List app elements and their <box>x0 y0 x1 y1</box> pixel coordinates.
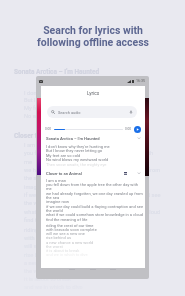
other: Expand <box>137 136 141 140</box>
staticText: the world <box>24 200 48 207</box>
staticText: you fell down from the apple tree the ot… <box>24 150 154 157</box>
button[interactable]: Play <box>134 126 141 133</box>
staticText: we had already forgotten, we one day cra… <box>24 167 161 174</box>
staticText: the sea <box>46 195 60 200</box>
staticText: find the meaning of life <box>46 217 88 222</box>
staticText: Lyrics <box>87 91 100 97</box>
staticText: Sonata Arctica – I'm Haunted <box>14 68 100 76</box>
staticText: a new chance a new world <box>24 260 91 267</box>
staticText: the world <box>46 208 63 213</box>
staticText: Closer to an Animal <box>46 171 82 176</box>
staticText: if we one day could build a flaying cont… <box>24 192 161 199</box>
staticText: the sea <box>24 175 43 182</box>
button[interactable]: Closer to an Animal <box>46 170 141 176</box>
staticText: will we see a new one <box>46 231 85 236</box>
staticText: Closer to an Animal <box>14 132 72 140</box>
staticText: if we one day could build a flaying cont… <box>46 204 144 209</box>
other: Voice search <box>129 110 133 114</box>
staticText: we had already forgotten, we one day cra… <box>46 191 143 196</box>
staticText: No wind blows my westward world <box>46 157 109 162</box>
staticText: I am a man <box>24 142 53 149</box>
staticText: me <box>46 186 52 191</box>
staticText: the worst <box>46 244 63 249</box>
staticText: and we in which to dive <box>46 252 88 257</box>
staticText: Then snow awaits, the mighty eye <box>46 162 107 167</box>
staticText: rise behind us <box>24 252 60 259</box>
staticText: My feet are so cold <box>24 105 73 112</box>
staticText: My feet are so cold <box>46 153 81 158</box>
staticText: But I know they never letting go <box>46 148 103 153</box>
staticText: the worst <box>24 268 48 275</box>
other: Expand <box>137 171 141 175</box>
staticText: 16:35 <box>136 79 145 83</box>
staticText: 0:00 <box>45 127 52 131</box>
staticText: will we see a new one <box>24 243 79 250</box>
staticText: rise behind us <box>46 235 72 240</box>
staticText: But I know they never letting go <box>24 97 103 104</box>
staticText: Search audio <box>58 110 81 115</box>
button[interactable]: Sonata Arctica – I'm Haunted <box>46 135 141 141</box>
staticText: I don't know why they're hunting me <box>24 90 114 97</box>
staticText: riding the crest of our time <box>24 227 91 234</box>
staticText: No wind blows my westward world <box>24 113 112 120</box>
button[interactable]: Search audio <box>47 106 137 118</box>
staticText: Search for lyrics with following offline… <box>37 24 149 49</box>
staticText: Sonata Arctica – I'm Haunted <box>46 136 100 141</box>
staticText: imagine now <box>46 199 69 204</box>
staticText: it is about to break <box>46 248 80 253</box>
staticText: with bravado soon complete <box>24 235 96 242</box>
staticText: what if we could somehow store knowledge… <box>46 212 143 217</box>
staticText: a new chance a new world <box>46 240 94 245</box>
staticText: with bravado soon complete <box>46 227 97 232</box>
staticText: what if we could somehow store knowledge… <box>24 209 161 216</box>
staticText: it is about to break <box>24 276 71 283</box>
staticText: me <box>24 159 33 166</box>
staticText: 0:00 <box>125 127 132 131</box>
staticText: imagine now <box>24 184 57 191</box>
staticText: I am a man <box>46 178 67 183</box>
staticText: find the meaning of life <box>24 217 83 224</box>
staticText: I don't know why they're hunting me <box>46 144 110 149</box>
staticText: riding the crest of our time <box>46 223 94 228</box>
staticText: you fell down from the apple tree the ot… <box>46 182 138 187</box>
